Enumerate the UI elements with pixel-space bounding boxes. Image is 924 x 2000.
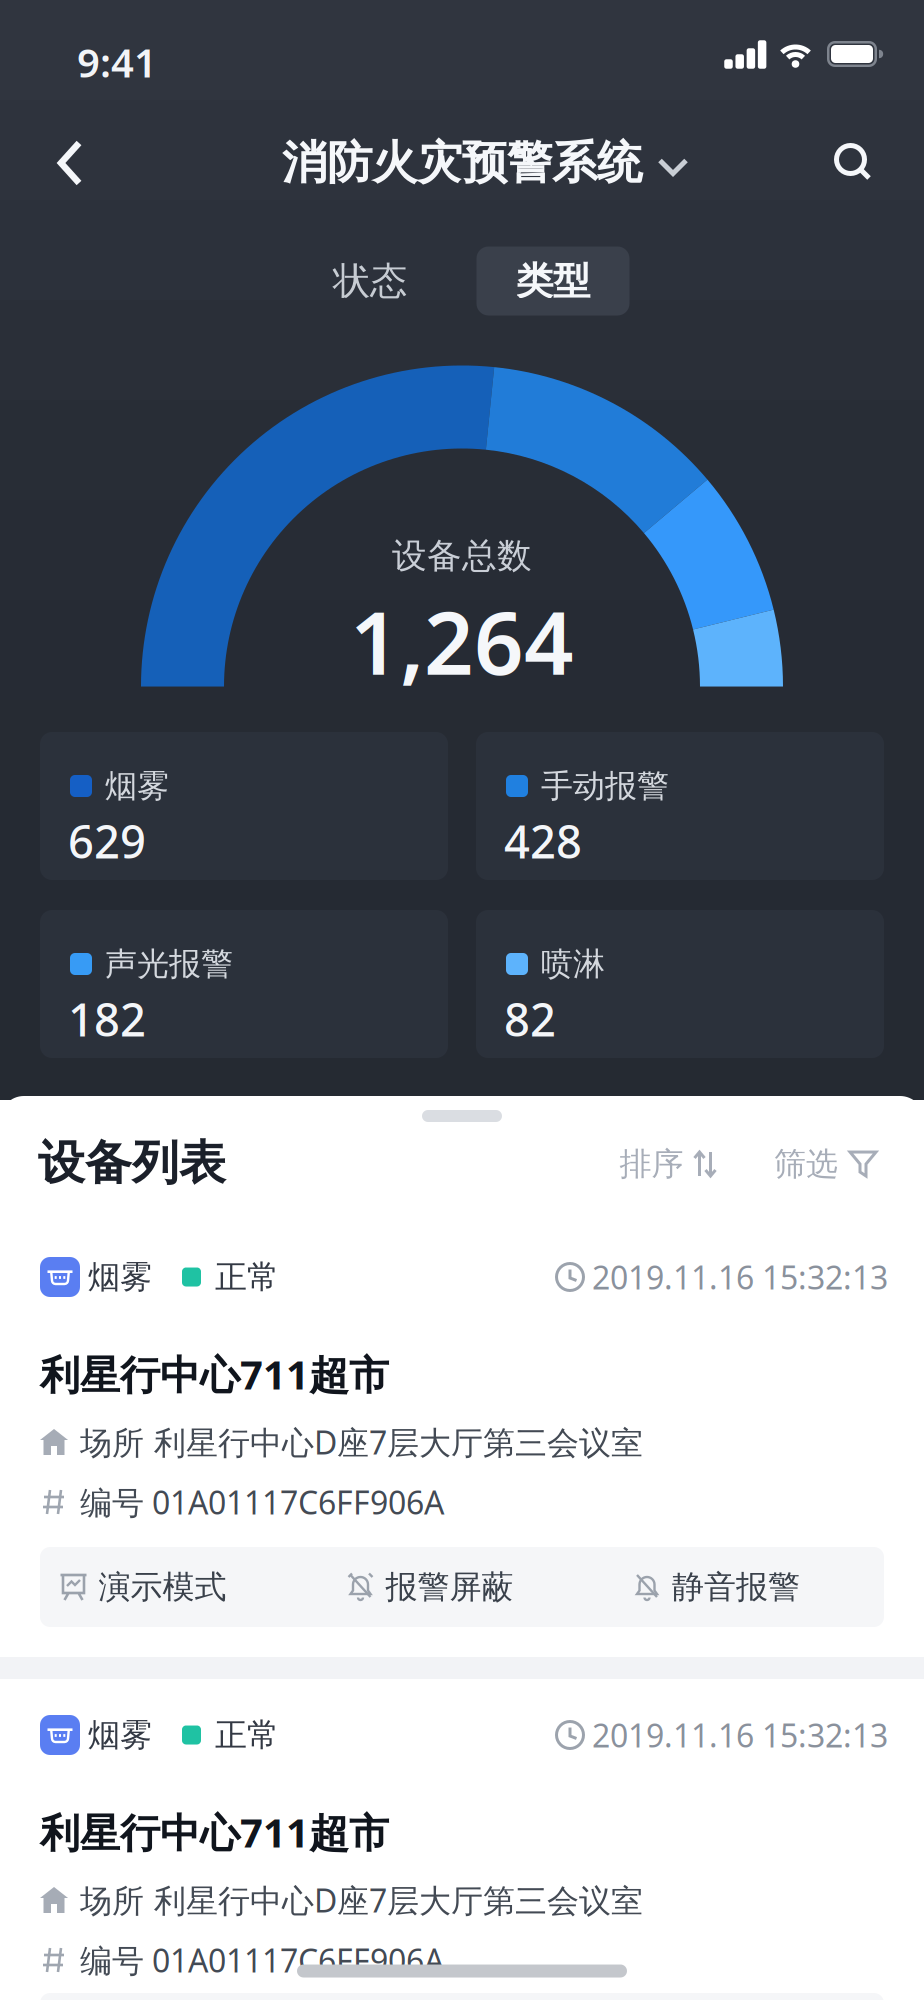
staticText: 正常: [215, 1715, 279, 1755]
staticText: 2019.11.16 15:32:13: [592, 1714, 888, 1756]
staticText: 利星行中心711超市: [40, 1347, 389, 1400]
staticText: 正常: [215, 1257, 279, 1297]
button[interactable]: 演示模式: [33, 1547, 253, 1627]
staticText: 82: [504, 989, 556, 1049]
staticText: 声光报警: [105, 944, 233, 984]
staticText: 手动报警: [541, 766, 669, 806]
staticText: 182: [68, 989, 146, 1049]
staticText: 静音报警: [672, 1567, 800, 1607]
staticText: 烟雾: [105, 766, 169, 806]
button[interactable]: 报警屏蔽: [320, 1547, 540, 1627]
staticText: 消防火灾预警系统: [282, 135, 642, 191]
staticText: 演示模式: [98, 1567, 226, 1607]
staticText: 场所 利星行中心D座7层大厅第三会议室: [80, 1421, 643, 1463]
staticText: 629: [68, 811, 146, 871]
staticText: 1,264: [350, 583, 574, 699]
staticText: 烟雾: [88, 1715, 152, 1755]
button[interactable]: 烟雾: [40, 1715, 884, 1980]
button[interactable]: 排序: [603, 1136, 733, 1192]
button[interactable]: Search: [825, 134, 881, 190]
button[interactable]: 烟雾: [40, 1257, 884, 1522]
staticText: 2019.11.16 15:32:13: [592, 1256, 888, 1298]
staticText: 428: [504, 811, 582, 871]
button[interactable]: 状态: [290, 246, 450, 315]
staticText: 烟雾: [88, 1257, 152, 1297]
staticText: 筛选: [774, 1144, 838, 1184]
staticText: 设备列表: [38, 1134, 226, 1192]
staticText: 设备总数: [392, 535, 532, 577]
staticText: 排序: [619, 1144, 683, 1184]
button[interactable]: 静音报警: [607, 1547, 827, 1627]
staticText: 编号 01A01117C6FF906A: [80, 1939, 444, 1981]
staticText: 状态: [333, 258, 407, 304]
staticText: 编号 01A01117C6FF906A: [80, 1481, 444, 1523]
button[interactable]: 筛选: [761, 1136, 891, 1192]
staticText: 报警屏蔽: [385, 1567, 513, 1607]
button[interactable]: Back: [42, 135, 98, 191]
staticText: 9:41: [77, 35, 157, 88]
staticText: 利星行中心711超市: [40, 1805, 389, 1858]
staticText: 场所 利星行中心D座7层大厅第三会议室: [80, 1879, 643, 1921]
staticText: 类型: [516, 258, 590, 304]
button[interactable]: 类型: [476, 246, 629, 315]
button[interactable]: 消防火灾预警系统: [270, 130, 700, 196]
staticText: 喷淋: [541, 944, 605, 984]
